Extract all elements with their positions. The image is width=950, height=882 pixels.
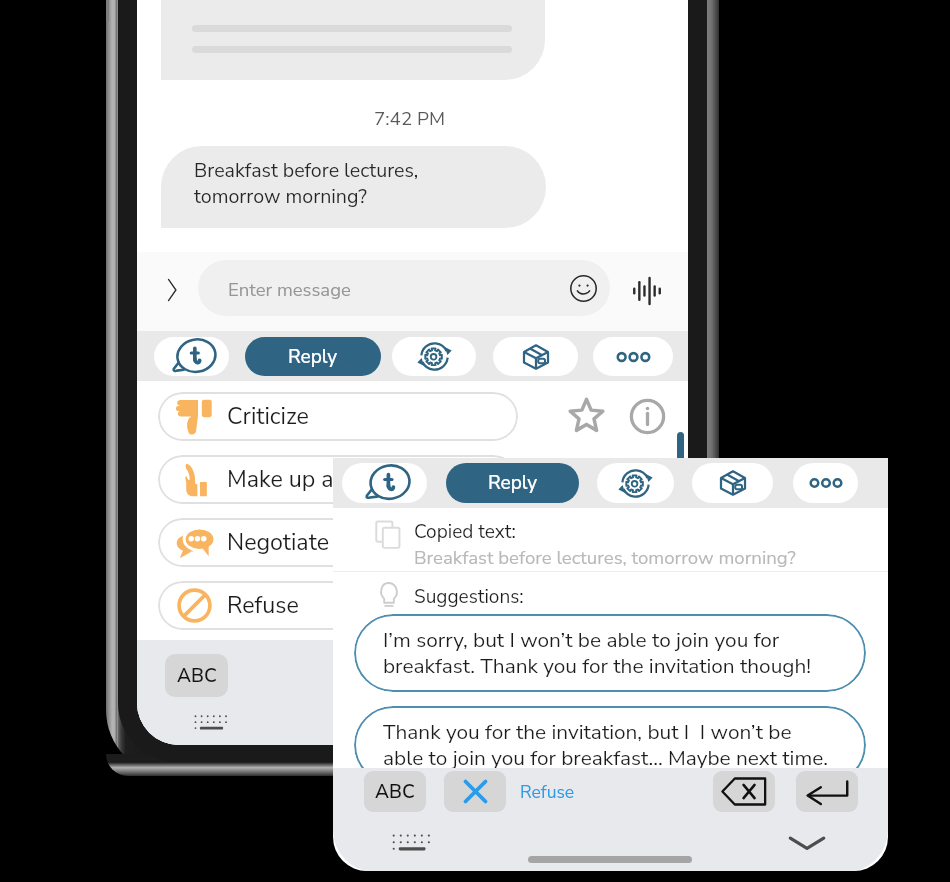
- button[interactable]: Criticize: [158, 392, 518, 441]
- button[interactable]: Refresh settings: [392, 337, 476, 376]
- staticText: Suggestions:: [414, 584, 524, 610]
- staticText: Negotiate: [227, 527, 329, 559]
- button[interactable]: Favourite: [569, 399, 604, 434]
- staticText: 7:42 PM: [137, 106, 685, 132]
- button[interactable]: Bubble t: [154, 337, 229, 376]
- staticText: ABC: [177, 663, 217, 689]
- other: Keyboard: [392, 832, 430, 852]
- staticText: Reply: [488, 470, 538, 496]
- staticText: Make up a reason: [227, 464, 410, 496]
- button[interactable]: Refuse: [444, 771, 575, 812]
- button[interactable]: Backspace: [713, 771, 775, 812]
- button[interactable]: Package: [692, 463, 773, 503]
- button[interactable]: Refuse: [158, 581, 518, 630]
- button[interactable]: ABC: [364, 771, 426, 812]
- button[interactable]: More: [793, 463, 858, 503]
- button[interactable]: Thank you for the invitation, but I I wo…: [354, 706, 866, 784]
- staticText: Breakfast before lectures, tomorrow morn…: [414, 545, 796, 570]
- staticText: ABC: [375, 779, 415, 805]
- button[interactable]: Send: [165, 278, 179, 302]
- button[interactable]: Make up a reason: [158, 455, 518, 504]
- button[interactable]: Hide keyboard: [788, 832, 826, 854]
- button[interactable]: Enter: [796, 771, 858, 812]
- staticText: Criticize: [227, 401, 309, 433]
- button[interactable]: Info: [630, 399, 665, 434]
- other: Emoji: [570, 275, 597, 302]
- button[interactable]: I’m sorry, but I won’t be able to join y…: [354, 614, 866, 692]
- button[interactable]: Refresh settings: [597, 463, 674, 503]
- staticText: Enter message: [228, 277, 351, 302]
- button[interactable]: More: [593, 337, 673, 376]
- button[interactable]: Reply: [245, 337, 381, 376]
- staticText: Thank you for the invitation, but I I wo…: [383, 718, 829, 773]
- button[interactable]: Enter message: [198, 260, 610, 316]
- staticText: Refuse: [227, 590, 299, 622]
- button[interactable]: Voice input: [633, 278, 661, 304]
- button[interactable]: Bubble t: [342, 463, 427, 503]
- button[interactable]: Reply: [446, 463, 579, 503]
- staticText: I’m sorry, but I won’t be able to join y…: [383, 626, 812, 681]
- staticText: Refuse: [520, 780, 575, 804]
- other: Keyboard: [194, 713, 227, 731]
- button[interactable]: Negotiate: [158, 518, 518, 567]
- button[interactable]: ABC: [165, 654, 228, 697]
- staticText: Breakfast before lectures, tomorrow morn…: [194, 157, 419, 210]
- staticText: Copied text:: [414, 519, 516, 545]
- staticText: Reply: [288, 344, 338, 370]
- button[interactable]: Package: [493, 337, 578, 376]
